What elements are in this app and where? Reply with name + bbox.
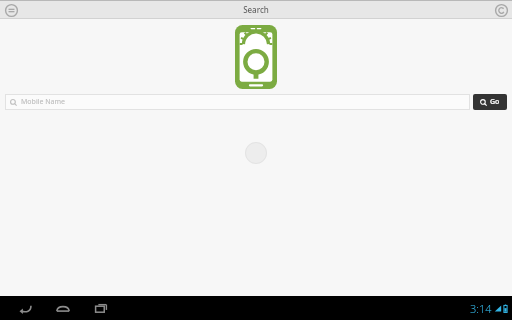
- button[interactable]: Mobile Name: [5, 94, 470, 110]
- button[interactable]: Menu: [3, 2, 19, 18]
- button[interactable]: Back: [10, 296, 40, 320]
- staticText: Go: [490, 97, 500, 107]
- button[interactable]: Recent apps: [86, 296, 116, 320]
- staticText: Mobile Name: [21, 97, 66, 107]
- button[interactable]: Refresh: [493, 2, 509, 18]
- staticText: 3:14: [470, 301, 492, 316]
- button[interactable]: Home: [48, 296, 78, 320]
- staticText: Search: [243, 4, 269, 15]
- button[interactable]: Go: [473, 94, 507, 110]
